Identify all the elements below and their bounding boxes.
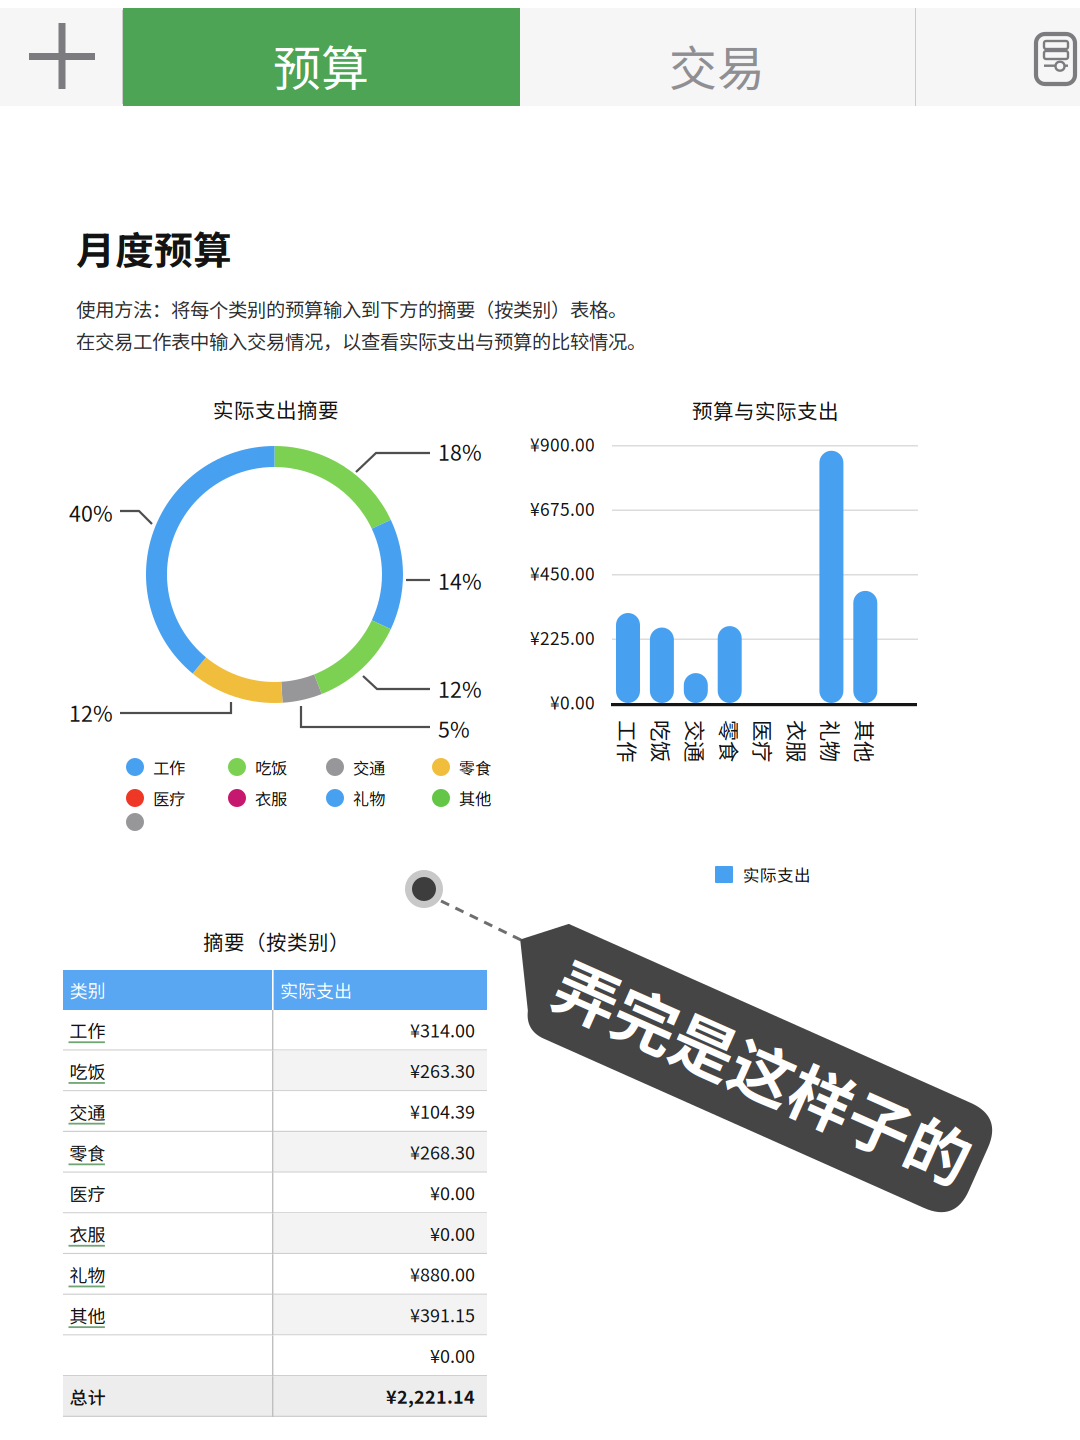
staticText: 衣服 <box>776 726 818 756</box>
staticText: 12% <box>438 673 482 704</box>
staticText: 零食 <box>459 755 491 779</box>
staticText: ¥104.39 <box>410 1098 475 1124</box>
staticText: 交通 <box>69 1099 105 1125</box>
staticText: 其他 <box>69 1302 105 1328</box>
staticText: ¥263.30 <box>410 1057 475 1083</box>
staticText: ¥0.00 <box>430 1220 475 1246</box>
staticText: ¥268.30 <box>410 1139 475 1165</box>
staticText: 实际支出 <box>743 862 811 886</box>
staticText: 12% <box>69 697 113 728</box>
staticText: 预算与实际支出 <box>692 395 839 425</box>
staticText: 零食 <box>69 1139 105 1165</box>
staticText: 医疗 <box>69 1180 105 1206</box>
staticText: 医疗 <box>743 726 785 756</box>
staticText: 其他 <box>459 786 491 810</box>
staticText: 医疗 <box>153 786 185 810</box>
staticText: 14% <box>438 565 482 596</box>
button[interactable]: 交易 <box>520 8 915 106</box>
staticText: 总计 <box>69 1383 105 1410</box>
staticText: 礼物 <box>69 1261 105 1287</box>
staticText: 交易 <box>669 30 765 100</box>
staticText: 实际支出 <box>280 977 352 1003</box>
staticText: 摘要（按类别） <box>203 926 350 956</box>
staticText: 交通 <box>353 755 385 779</box>
staticText: 月度预算 <box>76 220 232 276</box>
staticText: 工作 <box>607 726 649 756</box>
staticText: 40% <box>69 497 113 528</box>
staticText: ¥314.00 <box>410 1016 475 1043</box>
staticText: ¥0.00 <box>550 689 595 714</box>
staticText: 工作 <box>69 1017 105 1043</box>
staticText: 18% <box>438 436 482 467</box>
staticText: 礼物 <box>810 726 852 756</box>
button[interactable]: 格式 <box>916 8 1080 106</box>
staticText: ¥900.00 <box>530 431 595 456</box>
button[interactable]: 新建 <box>0 8 123 106</box>
staticText: 使用方法：将每个类别的预算输入到下方的摘要（按类别）表格。 <box>76 294 627 322</box>
staticText: 吃饭 <box>69 1058 105 1084</box>
staticText: ¥675.00 <box>530 496 595 521</box>
button[interactable]: 预算 <box>123 8 520 106</box>
staticText: ¥450.00 <box>530 560 595 585</box>
staticText: ¥0.00 <box>430 1179 475 1205</box>
staticText: 工作 <box>153 755 185 779</box>
staticText: 在交易工作表中输入交易情况，以查看实际支出与预算的比较情况。 <box>76 326 646 354</box>
staticText: 吃饭 <box>255 755 287 779</box>
staticText: 弄完是这样子的 <box>540 1015 988 1108</box>
staticText: 5% <box>438 713 470 744</box>
staticText: 零食 <box>709 726 751 756</box>
staticText: ¥2,221.14 <box>386 1383 475 1409</box>
staticText: 衣服 <box>69 1221 105 1247</box>
staticText: 衣服 <box>255 786 287 810</box>
staticText: ¥225.00 <box>530 625 595 650</box>
staticText: 吃饭 <box>641 726 683 756</box>
staticText: ¥391.15 <box>410 1301 475 1327</box>
staticText: 礼物 <box>353 786 385 810</box>
staticText: ¥0.00 <box>430 1342 475 1368</box>
staticText: ¥880.00 <box>410 1261 475 1287</box>
staticText: 类别 <box>69 977 105 1003</box>
staticText: 交通 <box>675 726 717 756</box>
staticText: 实际支出摘要 <box>213 394 339 424</box>
staticText: 其他 <box>844 726 886 756</box>
staticText: 预算 <box>273 30 369 100</box>
